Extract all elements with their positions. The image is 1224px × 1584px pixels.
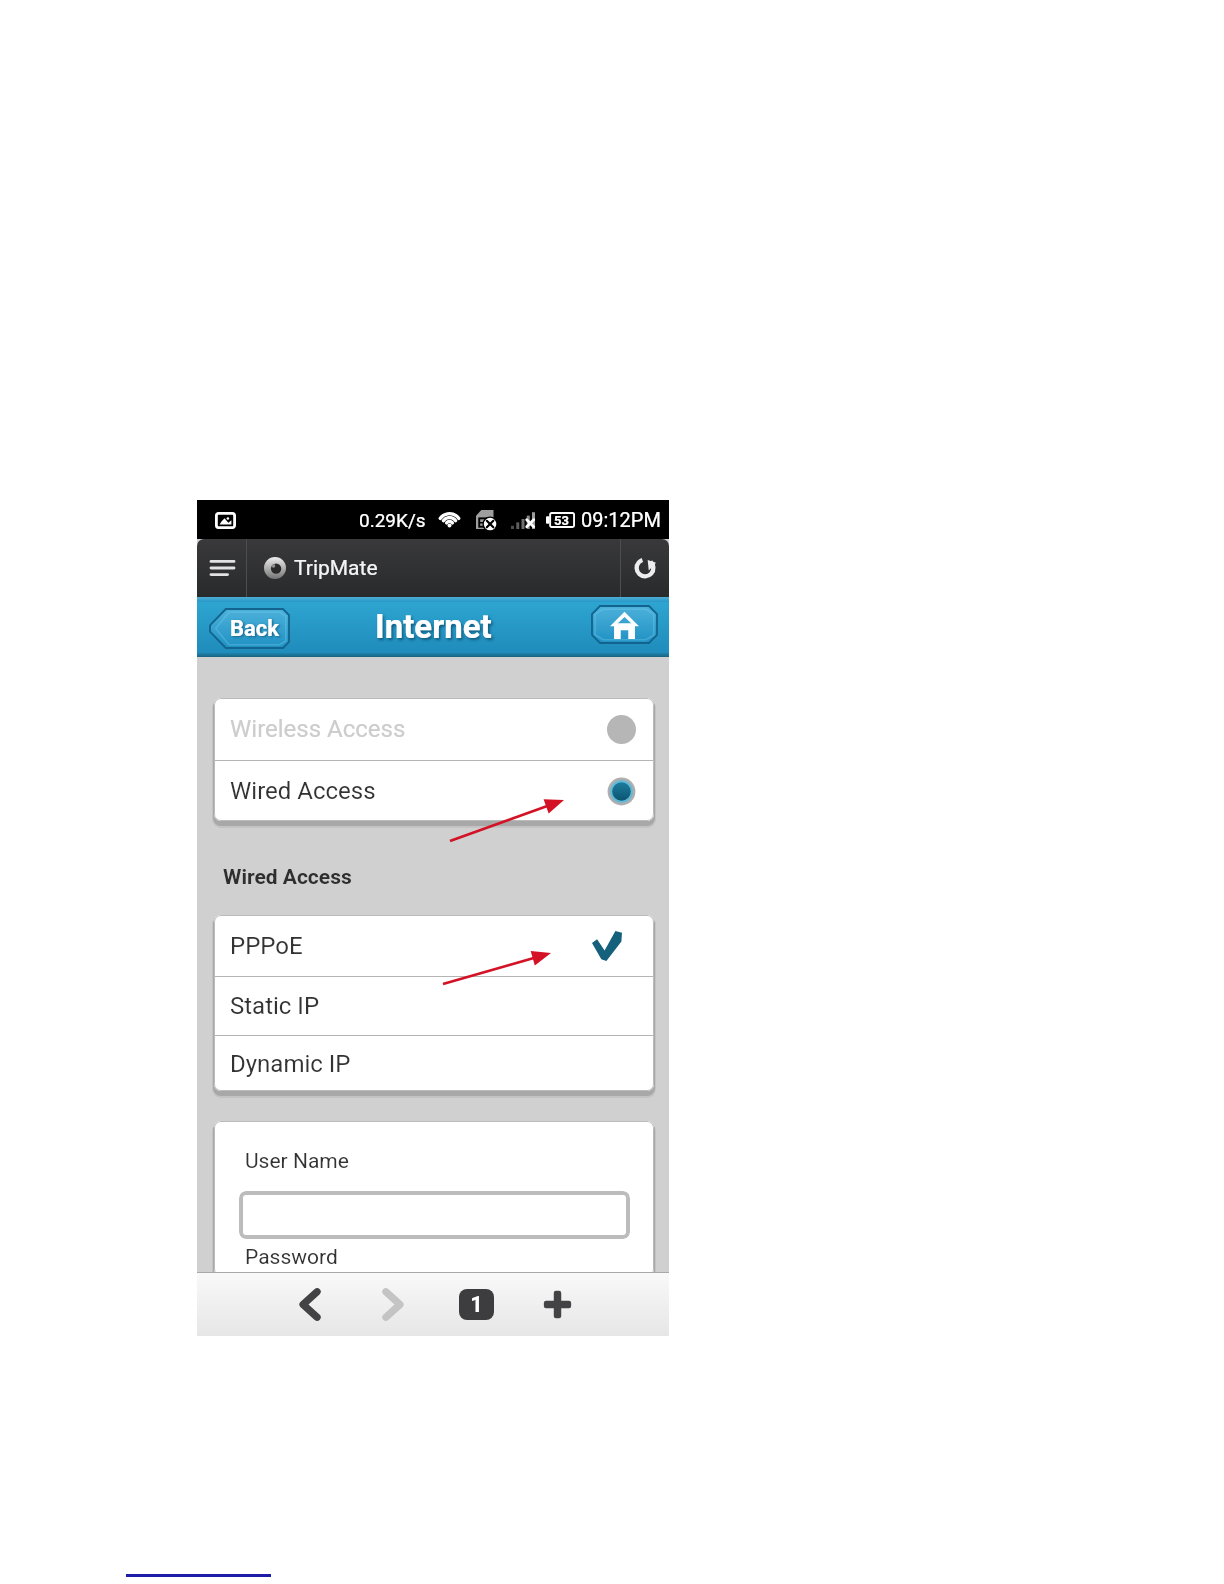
staticText: Back (230, 616, 280, 642)
button[interactable]: Previous (282, 1272, 336, 1336)
button[interactable]: Home (592, 606, 657, 643)
staticText: Dynamic IP (230, 1050, 351, 1078)
button[interactable]: Dynamic IP (214, 1036, 654, 1091)
staticText: Password (245, 1245, 338, 1270)
staticText: 1 (470, 1292, 483, 1318)
button[interactable]: Refresh (621, 539, 669, 597)
staticText: TripMate (294, 556, 378, 581)
staticText: Wired Access (223, 865, 352, 890)
button[interactable]: Menu (197, 539, 247, 597)
button[interactable]: New tab (530, 1272, 584, 1336)
button[interactable]: Wired Access (214, 761, 654, 821)
staticText: User Name (245, 1149, 349, 1174)
staticText: 0.29K/s (359, 509, 426, 531)
button[interactable]: Next (366, 1272, 420, 1336)
staticText: PPPoE (230, 932, 303, 960)
button[interactable]: Wireless Access (214, 698, 654, 760)
button[interactable]: Static IP (214, 977, 654, 1035)
button[interactable]: Page 1 (449, 1272, 503, 1336)
staticText: Static IP (230, 992, 320, 1020)
staticText: 09:12PM (581, 508, 661, 531)
staticText: Internet (375, 607, 492, 646)
staticText: Wired Access (230, 777, 376, 805)
button[interactable]: Back (210, 609, 289, 648)
staticText: 53 (554, 513, 569, 528)
button[interactable] (239, 1191, 630, 1239)
staticText: Wireless Access (230, 715, 406, 743)
button[interactable]: PPPoE (214, 915, 654, 976)
